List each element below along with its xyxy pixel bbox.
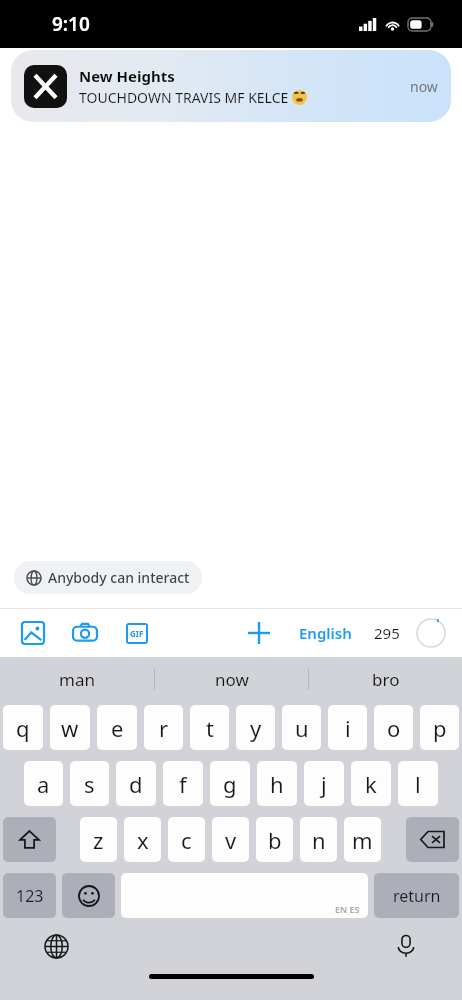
button[interactable]: j [304, 761, 344, 806]
staticText: m [352, 825, 373, 855]
staticText: t [206, 713, 214, 743]
button[interactable]: 123 [3, 873, 56, 918]
staticText: j [321, 769, 327, 799]
staticText: 9:10 [52, 11, 90, 37]
button[interactable]: v [212, 817, 249, 862]
staticText: o [387, 713, 401, 743]
button[interactable]: y [236, 705, 275, 750]
button[interactable]: r [144, 705, 183, 750]
staticText: New Heights [79, 66, 175, 86]
staticText: c [181, 825, 192, 855]
button[interactable]: b [256, 817, 293, 862]
button[interactable]: x [124, 817, 161, 862]
staticText: f [179, 769, 187, 799]
staticText: Cmon [86, 66, 145, 95]
staticText: r [159, 713, 169, 743]
staticText: GIF [130, 628, 144, 639]
staticText: l [415, 769, 421, 799]
staticText: TOUCHDOWN TRAVIS MF KELCE [79, 88, 292, 107]
button[interactable]: p [420, 705, 459, 750]
staticText: n [312, 825, 326, 855]
staticText: x [137, 825, 149, 855]
staticText: b [268, 825, 282, 855]
button[interactable]: Change keyboard [36, 926, 76, 966]
button[interactable]: f [163, 761, 203, 806]
button[interactable] [18, 56, 68, 106]
staticText: a [37, 769, 50, 799]
button[interactable]: now [155, 657, 308, 701]
button[interactable]: e [97, 705, 137, 750]
staticText: e [111, 713, 124, 743]
button[interactable]: o [374, 705, 413, 750]
button[interactable]: g [210, 761, 250, 806]
button[interactable]: w [50, 705, 90, 750]
staticText: p [433, 713, 447, 743]
button[interactable]: s [70, 761, 109, 806]
staticText: now [410, 77, 438, 96]
staticText: English [299, 623, 352, 643]
button[interactable]: m [344, 817, 381, 862]
button[interactable]: l [398, 761, 438, 806]
button[interactable]: return [374, 873, 459, 918]
button[interactable]: t [190, 705, 229, 750]
button[interactable]: Shift [3, 817, 56, 862]
staticText: u [295, 713, 309, 743]
button[interactable]: New Heights [11, 50, 451, 122]
button[interactable]: Anybody can interact [14, 561, 202, 594]
button[interactable]: u [282, 705, 321, 750]
staticText: bro [372, 668, 400, 691]
button[interactable]: c [168, 817, 205, 862]
button[interactable]: Camera [66, 614, 104, 652]
staticText: y [250, 713, 262, 743]
staticText: v [225, 825, 237, 855]
button[interactable]: h [257, 761, 297, 806]
staticText: return [393, 885, 441, 907]
staticText: k [365, 769, 377, 799]
staticText: 123 [16, 885, 44, 907]
staticText: i [345, 713, 351, 743]
button[interactable]: Post [414, 616, 448, 650]
staticText: Anybody can interact [48, 568, 190, 587]
button[interactable]: q [3, 705, 43, 750]
staticText: man [59, 668, 95, 691]
staticText: d [129, 769, 143, 799]
staticText: w [61, 713, 79, 743]
button[interactable]: GIF [118, 614, 156, 652]
button[interactable]: English [295, 619, 356, 647]
staticText: h [270, 769, 284, 799]
button[interactable]: n [300, 817, 337, 862]
button[interactable]: man [0, 657, 154, 701]
button[interactable]: a [24, 761, 63, 806]
staticText: s [84, 769, 95, 799]
button[interactable]: Space [121, 873, 368, 918]
button[interactable]: Add [239, 613, 279, 653]
button[interactable]: Delete [406, 817, 459, 862]
button[interactable]: k [351, 761, 391, 806]
staticText: now [215, 668, 249, 691]
button[interactable]: i [328, 705, 367, 750]
staticText: q [16, 713, 30, 743]
staticText: g [223, 769, 237, 799]
button[interactable]: z [80, 817, 117, 862]
staticText: EN ES [335, 903, 360, 915]
button[interactable]: bro [309, 657, 462, 701]
button[interactable]: Emoji [62, 873, 115, 918]
staticText: z [93, 825, 104, 855]
button[interactable]: d [116, 761, 156, 806]
staticText: 295 [374, 623, 400, 643]
button[interactable]: Dictate [386, 926, 426, 966]
button[interactable]: Add photo [14, 614, 52, 652]
